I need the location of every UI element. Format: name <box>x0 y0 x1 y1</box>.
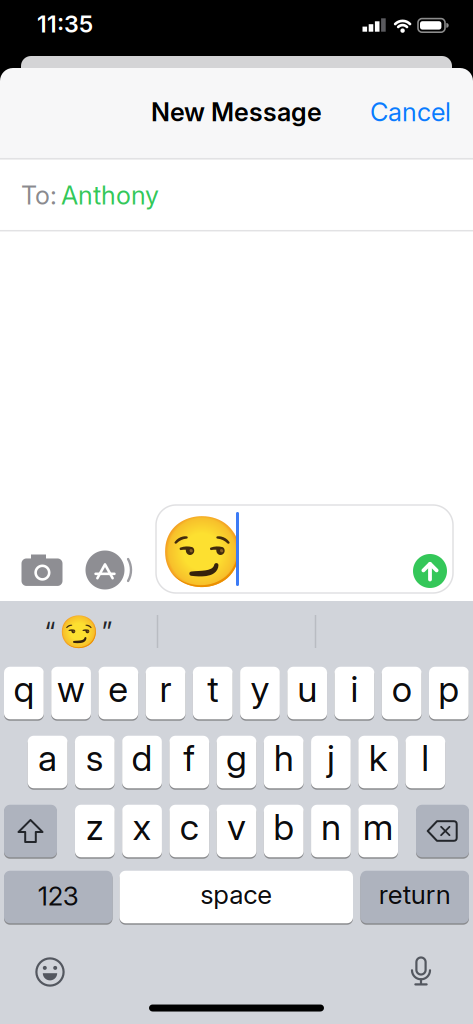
button[interactable]: Shift <box>4 803 57 858</box>
staticText: 11:35 <box>37 10 93 38</box>
staticText: x <box>133 805 152 849</box>
staticText: ” <box>101 616 112 648</box>
staticText: h <box>274 736 294 780</box>
staticText: w <box>57 667 85 711</box>
button[interactable]: “ <box>0 601 157 663</box>
staticText: New Message <box>151 97 322 127</box>
button[interactable]: w <box>51 665 91 720</box>
button[interactable]: y <box>240 665 280 720</box>
staticText: j <box>327 736 335 780</box>
button[interactable]: Message body <box>159 512 245 592</box>
button[interactable]: m <box>358 803 398 858</box>
button[interactable]: o <box>382 665 422 720</box>
button[interactable]: i <box>334 665 374 720</box>
button[interactable]: 123 <box>4 869 112 924</box>
staticText: p <box>438 667 459 711</box>
staticText: q <box>13 667 34 711</box>
staticText: 123 <box>38 880 79 912</box>
staticText: Cancel <box>370 97 451 127</box>
staticText: i <box>350 667 358 711</box>
staticText: “ <box>44 616 55 648</box>
button[interactable]: z <box>75 803 115 858</box>
staticText: u <box>297 667 317 711</box>
staticText: s <box>86 736 104 780</box>
button[interactable]: j <box>311 734 351 789</box>
button[interactable]: d <box>122 734 162 789</box>
button[interactable]: c <box>169 803 209 858</box>
staticText: o <box>392 667 412 711</box>
staticText: 😏 <box>58 614 98 650</box>
button[interactable]: Camera <box>19 552 65 588</box>
staticText: space <box>200 879 272 910</box>
button[interactable]: f <box>169 734 209 789</box>
staticText: return <box>379 879 451 910</box>
staticText: b <box>273 805 294 849</box>
button[interactable]: b <box>264 803 304 858</box>
button[interactable]: q <box>4 665 44 720</box>
button[interactable]: l <box>405 734 445 789</box>
staticText: g <box>226 736 247 780</box>
staticText: a <box>38 736 57 780</box>
staticText: l <box>421 736 429 780</box>
button[interactable]: Emoji <box>35 957 65 987</box>
button[interactable]: p <box>429 665 469 720</box>
button[interactable]: Dictation <box>410 956 432 985</box>
staticText: n <box>321 805 341 849</box>
button[interactable]: k <box>358 734 398 789</box>
staticText: t <box>207 667 218 711</box>
button[interactable]: Send <box>413 554 447 588</box>
staticText: m <box>363 805 394 849</box>
staticText: c <box>180 805 199 849</box>
button[interactable]: t <box>193 665 233 720</box>
staticText: k <box>369 736 388 780</box>
button[interactable]: h <box>264 734 304 789</box>
button[interactable]: Apps <box>85 549 135 591</box>
staticText: r <box>159 667 171 711</box>
button[interactable]: r <box>146 665 185 720</box>
button[interactable]: Cancel <box>370 97 473 127</box>
button[interactable]: return <box>360 869 469 924</box>
staticText: v <box>227 805 246 849</box>
button[interactable]: e <box>98 665 138 720</box>
button[interactable]: s <box>75 734 115 789</box>
staticText: d <box>131 736 152 780</box>
staticText: Anthony <box>61 180 159 211</box>
button[interactable]: space <box>119 869 353 924</box>
staticText: y <box>250 667 269 711</box>
button[interactable]: v <box>217 803 256 858</box>
button[interactable]: x <box>122 803 162 858</box>
staticText: f <box>183 736 195 780</box>
staticText: z <box>86 805 104 849</box>
button[interactable]: n <box>311 803 351 858</box>
button[interactable]: a <box>28 734 67 789</box>
button[interactable]: u <box>287 665 327 720</box>
staticText: 😏 <box>159 512 245 592</box>
button[interactable]: g <box>217 734 256 789</box>
button[interactable]: Delete <box>416 803 469 858</box>
staticText: To: <box>21 180 57 211</box>
staticText: e <box>108 667 128 711</box>
